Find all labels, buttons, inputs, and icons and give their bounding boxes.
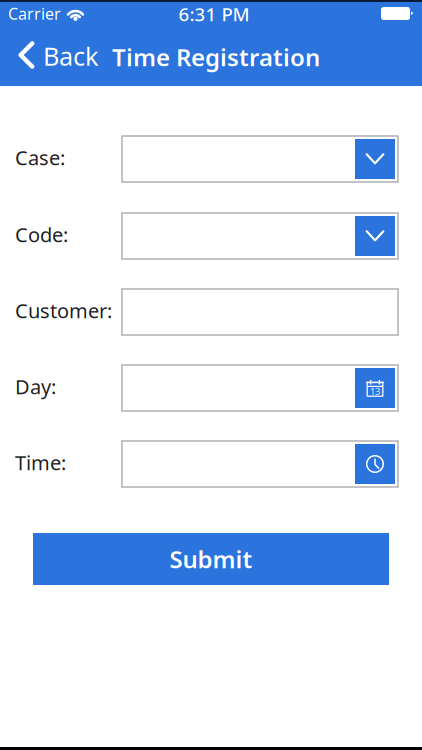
staticText: Time Registration <box>112 41 320 73</box>
staticText: Code: <box>15 221 68 248</box>
staticText: Case: <box>15 144 65 171</box>
staticText: 6:31 PM <box>178 2 249 26</box>
button[interactable]: Day <box>122 365 398 411</box>
staticText: Day: <box>15 373 56 400</box>
staticText: Submit <box>169 543 252 575</box>
staticText: Carrier <box>8 3 61 24</box>
button[interactable]: Time <box>122 441 398 487</box>
staticText: Back <box>43 39 99 73</box>
button[interactable]: Back <box>0 34 109 78</box>
button[interactable]: Submit <box>33 533 389 585</box>
button[interactable]: Customer <box>122 289 398 335</box>
button[interactable]: Case <box>122 136 398 182</box>
staticText: Customer: <box>15 297 112 324</box>
staticText: Time: <box>15 449 66 476</box>
button[interactable]: Code <box>122 213 398 259</box>
